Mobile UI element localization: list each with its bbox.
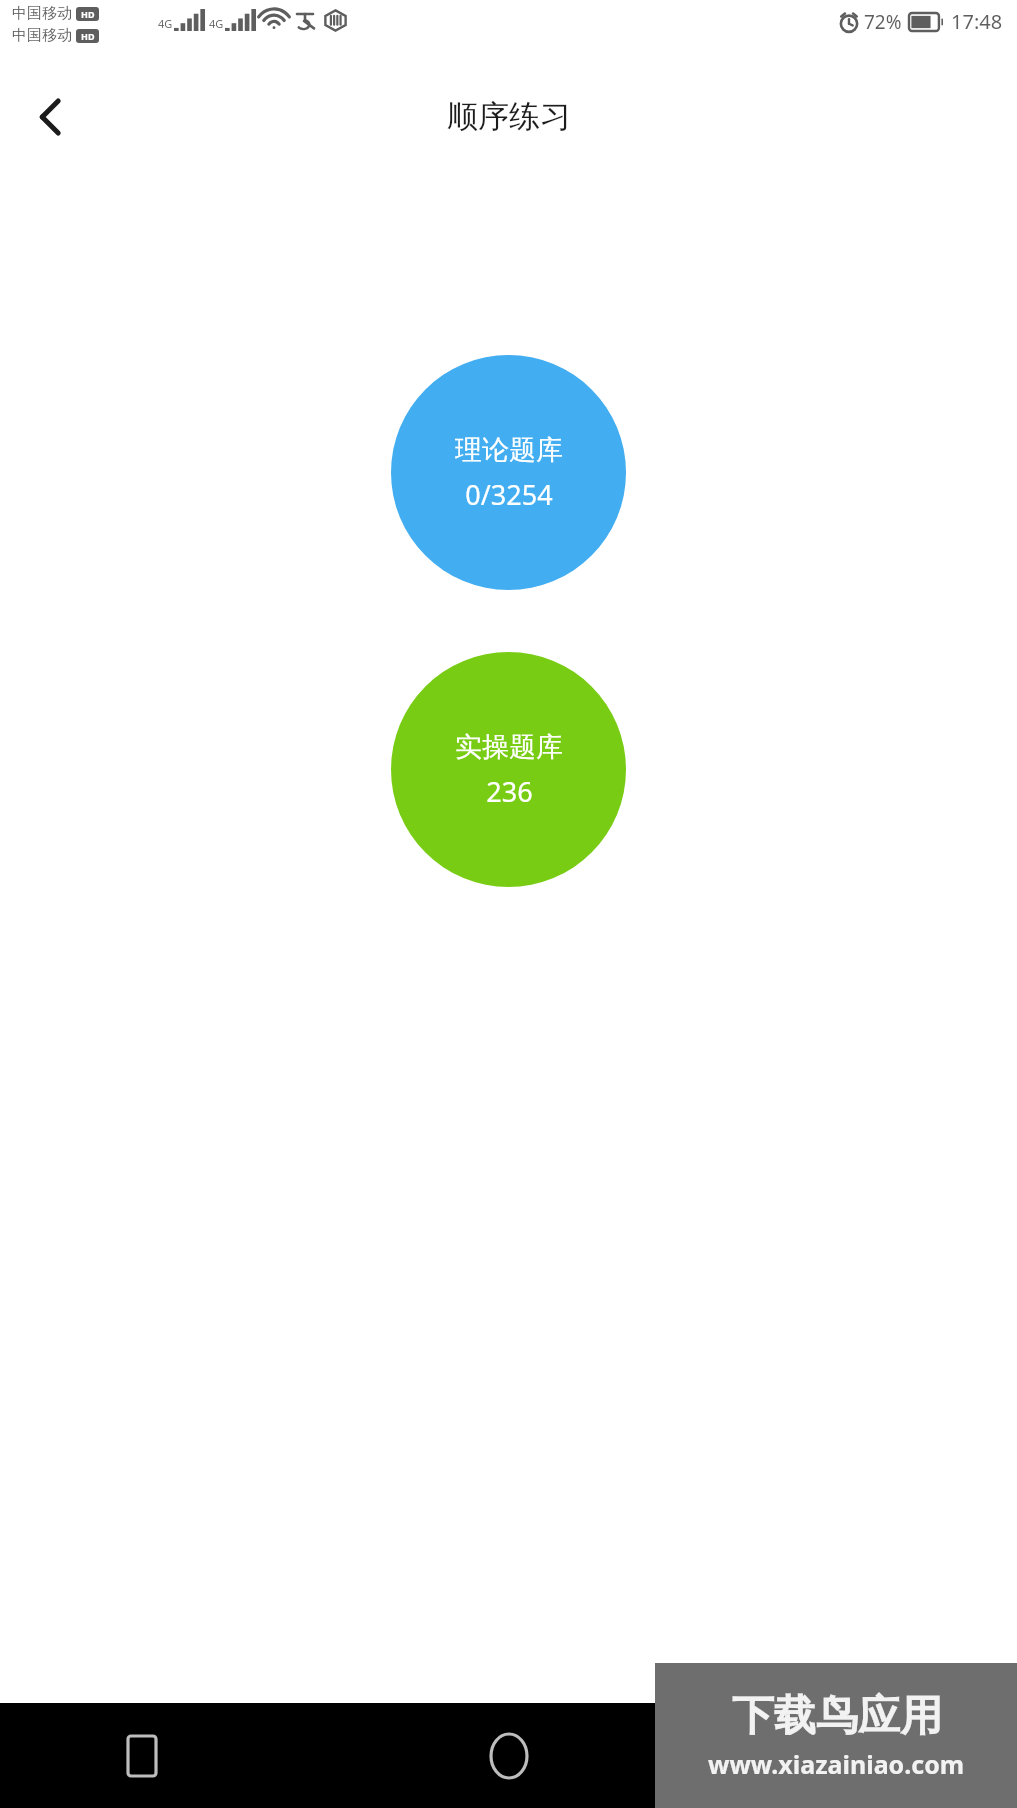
button[interactable]: Back	[20, 86, 82, 148]
staticText: 4G	[209, 16, 224, 31]
staticText: 理论题库	[455, 433, 563, 467]
staticText: 中国移动	[12, 4, 72, 23]
staticText: 236	[486, 773, 533, 810]
staticText: 4G	[158, 16, 173, 31]
staticText: 顺序练习	[447, 97, 571, 136]
button[interactable]: Recents	[110, 1724, 174, 1788]
staticText: HD	[81, 8, 95, 20]
staticText: 实操题库	[455, 730, 563, 764]
staticText: 中国移动	[12, 26, 72, 45]
staticText: www.xiazainiao.com	[708, 1747, 965, 1781]
staticText: 17:48	[951, 8, 1003, 35]
staticText: 72%	[864, 9, 902, 35]
staticText: 0/3254	[465, 476, 553, 513]
button[interactable]: 实操题库	[391, 652, 626, 887]
staticText: 下载鸟应用	[732, 1690, 942, 1743]
button[interactable]: Home	[477, 1724, 541, 1788]
button[interactable]: 理论题库	[391, 355, 626, 590]
staticText: HD	[81, 30, 95, 42]
